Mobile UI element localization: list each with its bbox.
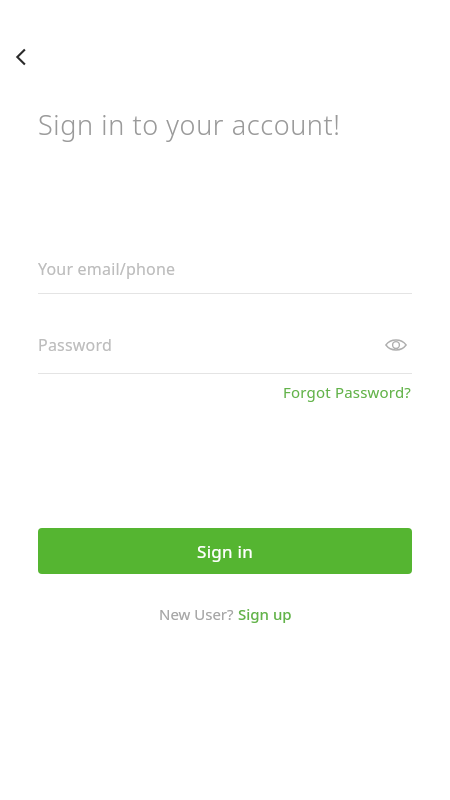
- staticText: Sign in to your account!: [38, 106, 341, 143]
- button[interactable]: Sign up: [238, 604, 292, 624]
- button[interactable]: Forgot Password?: [250, 382, 412, 402]
- staticText: Sign up: [238, 604, 292, 624]
- button[interactable]: Your email/phone: [38, 258, 412, 294]
- button[interactable]: Password: [38, 334, 112, 356]
- button[interactable]: Show password: [380, 329, 412, 361]
- button[interactable]: Back: [4, 39, 40, 75]
- staticText: Forgot Password?: [283, 382, 412, 402]
- staticText: New User?: [159, 604, 238, 624]
- staticText: Your email/phone: [38, 258, 176, 280]
- staticText: Sign in: [197, 540, 254, 563]
- button[interactable]: Sign in: [38, 528, 412, 574]
